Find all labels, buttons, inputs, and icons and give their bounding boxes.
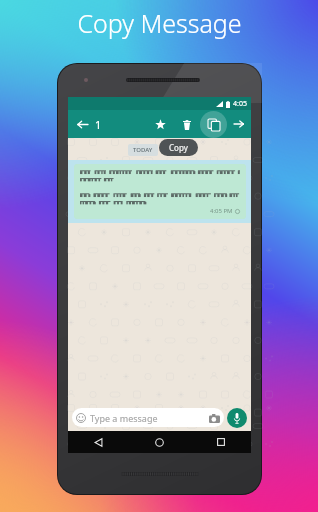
button[interactable]: Back	[73, 115, 91, 133]
staticText: 4:05 PM	[210, 207, 233, 215]
button[interactable]: Delete	[177, 115, 196, 134]
button[interactable]: Copy	[200, 111, 227, 138]
staticText: Copy Message	[77, 6, 242, 40]
button[interactable]: Forward	[230, 115, 248, 133]
staticText: Type a message	[90, 412, 158, 424]
button[interactable]: Back	[68, 431, 129, 453]
staticText: 4:05	[233, 99, 247, 109]
staticText: TODAY	[133, 146, 153, 154]
button[interactable]: Home	[129, 431, 190, 453]
button[interactable]: Record voice message	[227, 408, 247, 428]
button[interactable]: Type a message	[72, 408, 224, 427]
button[interactable]: Recent apps	[190, 431, 251, 453]
button[interactable]: Camera	[208, 412, 220, 424]
staticText: 1	[95, 117, 102, 132]
button[interactable]: Star	[151, 115, 170, 134]
staticText: Copy	[169, 142, 188, 153]
